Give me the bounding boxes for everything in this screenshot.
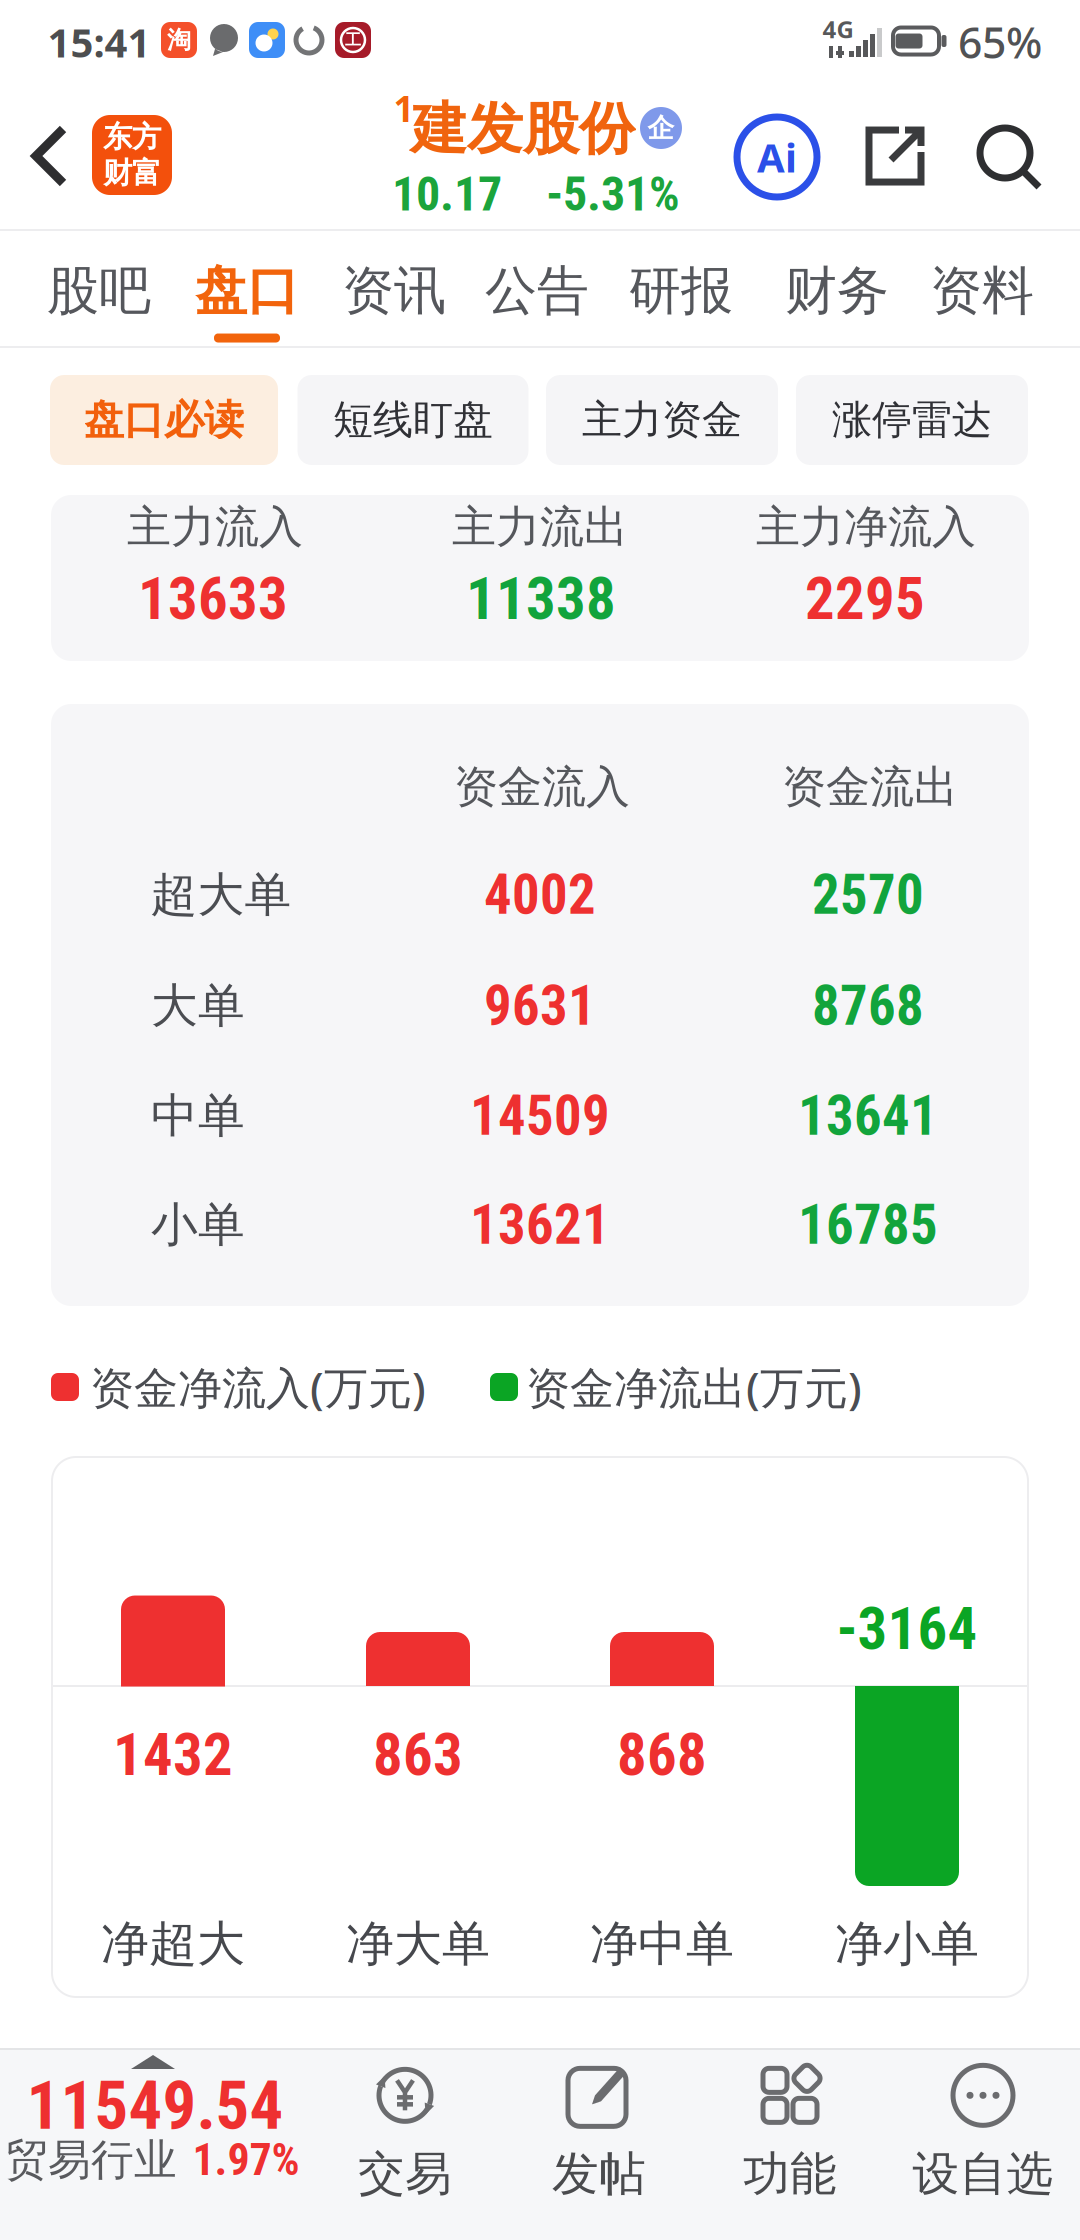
staticText: 13621 [470,1193,610,1257]
staticText: 65% [958,14,1042,70]
button[interactable]: 盘口必读 [50,375,278,465]
button[interactable]: 功能 [743,2059,837,2203]
staticText: 超大单 [150,866,291,924]
button[interactable]: 研报 [629,259,733,323]
staticText: Ai [757,130,797,183]
button[interactable]: AI助手 [737,117,817,197]
staticText: 2295 [805,565,925,633]
staticText: 1432 [113,1721,233,1789]
staticText: 净中单 [590,1914,734,1973]
staticText: 股吧 [47,259,151,323]
button[interactable]: 返回 [31,125,69,187]
staticText: 4G [822,13,853,45]
staticText: 淘 [167,25,191,55]
staticText: 建发股份 [411,95,635,163]
button[interactable]: 贸易行业指数 [0,2052,327,2212]
staticText: 15:41 [47,15,150,68]
staticText: -5.31% [546,166,680,222]
staticText: 涨停雷达 [832,395,992,444]
staticText: 13641 [798,1084,938,1148]
staticText: 主力流出 [452,500,628,554]
staticText: 1 [393,84,414,132]
staticText: 11549.54 [26,2067,283,2145]
staticText: 净超大 [101,1914,245,1973]
button[interactable]: 分享 [861,120,931,192]
staticText: 2570 [812,863,924,927]
button[interactable]: 财务 [785,259,889,323]
staticText: -3164 [836,1595,977,1663]
staticText: 资讯 [342,259,446,323]
staticText: 868 [617,1721,707,1789]
staticText: 9631 [484,974,596,1038]
staticText: 10.17 [392,166,502,222]
staticText: 资金流出 [782,760,958,814]
staticText: 贸易行业 [5,2134,177,2186]
staticText: 公告 [485,259,589,323]
staticText: 财富 [103,155,161,191]
staticText: 小单 [151,1196,245,1254]
staticText: 主力流入 [127,500,303,554]
button[interactable]: 公告 [485,259,589,323]
staticText: 1.97% [192,2134,299,2186]
staticText: 工 [345,30,361,50]
button[interactable]: 东方财富 [92,115,172,195]
button[interactable]: 股吧 [47,259,151,323]
staticText: 大单 [151,977,245,1035]
staticText: 中单 [151,1087,245,1145]
staticText: 863 [373,1721,463,1789]
staticText: 主力净流入 [756,500,976,554]
button[interactable]: 搜索 [975,123,1045,193]
staticText: 盘口必读 [84,395,244,444]
staticText: 企 [647,112,674,144]
staticText: 4002 [484,863,596,927]
staticText: 财务 [785,259,889,323]
staticText: 11338 [466,565,616,633]
button[interactable]: 设自选 [912,2059,1053,2203]
staticText: 主力资金 [582,395,742,444]
staticText: 资金净流入(万元) [90,1358,426,1416]
staticText: 资金净流出(万元) [526,1358,862,1416]
staticText: 短线盯盘 [333,395,493,444]
button[interactable]: 发帖 [552,2059,646,2203]
staticText: 净小单 [835,1914,979,1973]
button[interactable]: 短线盯盘 [297,375,528,465]
button[interactable]: 资讯 [342,259,446,323]
button[interactable]: 盘口 [195,259,299,323]
button[interactable]: 交易 [358,2059,452,2203]
staticText: 盘口 [195,259,299,323]
staticText: 交易 [358,2145,452,2203]
staticText: 14509 [470,1084,610,1148]
button[interactable]: 主力资金 [546,375,778,465]
button[interactable]: 涨停雷达 [796,375,1028,465]
staticText: 研报 [629,259,733,323]
staticText: 东方 [103,119,161,155]
staticText: 16785 [798,1193,938,1257]
staticText: 设自选 [912,2145,1053,2203]
staticText: 发帖 [552,2145,646,2203]
staticText: 净大单 [346,1914,490,1973]
staticText: 13633 [138,565,288,633]
staticText: 功能 [743,2145,837,2203]
staticText: 资料 [930,259,1034,323]
staticText: 资金流入 [454,760,630,814]
staticText: 8768 [812,974,924,1038]
button[interactable]: 资料 [930,259,1034,323]
